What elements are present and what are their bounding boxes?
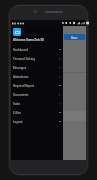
staticText: Attendance xyxy=(13,75,29,79)
button[interactable]: Personal Setting xyxy=(11,54,63,63)
button[interactable]: Documents xyxy=(11,90,63,99)
button[interactable]: E-files xyxy=(11,108,63,117)
staticText: Request/Report xyxy=(13,84,35,88)
button[interactable]: Dashboard xyxy=(11,45,63,54)
staticText: Dashboard xyxy=(13,48,28,52)
staticText: E-files xyxy=(13,111,21,115)
staticText: Done xyxy=(71,36,78,39)
staticText: Logout xyxy=(13,120,23,124)
button[interactable]: Attendance xyxy=(11,72,63,81)
button[interactable]: App logo xyxy=(13,28,21,36)
staticText: Personal Setting xyxy=(13,57,35,61)
staticText: Messages xyxy=(13,66,27,70)
staticText: Tasks xyxy=(13,102,21,106)
button[interactable]: Tasks xyxy=(11,99,63,108)
button[interactable]: Done xyxy=(64,34,85,40)
staticText: Documents xyxy=(13,93,29,97)
button[interactable]: Logout xyxy=(11,117,63,126)
staticText: Welcome Demo Deb SD xyxy=(13,38,44,42)
button[interactable]: Messages xyxy=(11,63,63,72)
button[interactable]: Request/Report xyxy=(11,81,63,90)
